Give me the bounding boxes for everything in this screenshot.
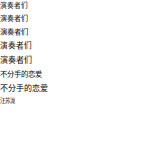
staticText: 汪苏泷: [0, 96, 15, 104]
staticText: 不分手的恋爱: [0, 68, 42, 79]
staticText: 演奏者们: [0, 0, 28, 10]
staticText: 不分手的恋爱: [0, 82, 48, 93]
staticText: 演奏者们: [0, 13, 28, 23]
staticText: 演奏者们: [0, 39, 32, 50]
staticText: 演奏者们: [0, 26, 28, 36]
staticText: 演奏者们: [0, 53, 32, 65]
